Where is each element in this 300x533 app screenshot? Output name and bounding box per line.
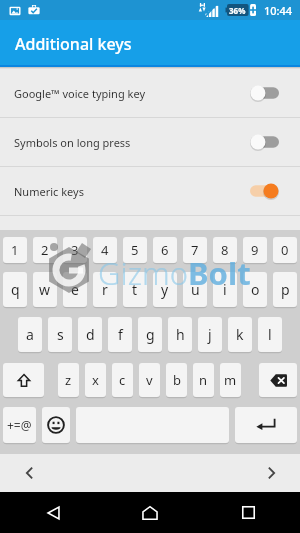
button[interactable]: Next [242, 454, 300, 492]
button[interactable]: p [273, 272, 297, 307]
button[interactable]: i [213, 272, 237, 307]
button[interactable]: +=@ [3, 407, 36, 443]
button[interactable]: j [198, 317, 222, 352]
staticText: w [39, 280, 51, 299]
staticText: f [118, 325, 123, 344]
staticText: v [146, 371, 153, 389]
staticText: a [26, 325, 34, 344]
button[interactable]: x [85, 363, 106, 397]
button[interactable]: Emoji [42, 407, 70, 443]
staticText: 6 [161, 241, 169, 259]
button[interactable]: Backspace [259, 363, 297, 397]
staticText: 8 [221, 241, 229, 259]
button[interactable]: w [33, 272, 57, 307]
button[interactable]: Previous [0, 454, 58, 492]
button[interactable]: 2 [33, 237, 57, 263]
button[interactable]: 7 [183, 237, 207, 263]
staticText: c [119, 371, 126, 389]
staticText: g [146, 325, 155, 344]
staticText: x [92, 371, 99, 389]
staticText: 9 [251, 241, 259, 259]
staticText: 4 [101, 241, 109, 259]
staticText: u [191, 280, 200, 299]
button[interactable]: 4 [93, 237, 117, 263]
button[interactable]: n [193, 363, 214, 397]
staticText: Numeric keys [14, 184, 250, 199]
staticText: 10:44 [264, 3, 293, 18]
staticText: Bolt [188, 252, 251, 294]
button[interactable]: Recents [203, 492, 293, 533]
staticText: e [71, 280, 79, 299]
button[interactable]: c [112, 363, 133, 397]
staticText: n [199, 371, 208, 389]
button[interactable]: d [78, 317, 102, 352]
button[interactable]: o [243, 272, 267, 307]
button[interactable]: 8 [213, 237, 237, 263]
staticText: Additional keys [15, 33, 132, 55]
button[interactable]: t [123, 272, 147, 307]
staticText: 1 [11, 241, 19, 259]
staticText: j [208, 325, 212, 344]
staticText: Gizmo [98, 252, 188, 294]
button[interactable]: y [153, 272, 177, 307]
staticText: 2 [41, 241, 49, 259]
button[interactable]: 6 [153, 237, 177, 263]
staticText: y [161, 280, 169, 299]
staticText: m [224, 371, 237, 389]
staticText: p [281, 280, 290, 299]
staticText: z [65, 371, 72, 389]
button[interactable]: k [228, 317, 252, 352]
staticText: 3 [71, 241, 79, 259]
staticText: 36% [229, 5, 246, 16]
button[interactable]: h [168, 317, 192, 352]
button[interactable]: r [93, 272, 117, 307]
button[interactable]: 0 [273, 237, 297, 263]
button[interactable]: 3 [63, 237, 87, 263]
button[interactable]: Back [8, 492, 98, 533]
staticText: Symbols on long press [14, 135, 250, 150]
staticText: s [57, 325, 64, 344]
staticText: i [223, 280, 227, 299]
button[interactable]: l [258, 317, 282, 352]
button[interactable]: v [139, 363, 160, 397]
button[interactable]: Numeric keys [0, 167, 300, 215]
staticText: k [236, 325, 244, 344]
staticText: +=@ [7, 417, 32, 433]
staticText: 5 [131, 241, 139, 259]
staticText: d [86, 325, 95, 344]
button[interactable]: 1 [3, 237, 27, 263]
button[interactable]: Enter [235, 407, 297, 443]
button[interactable]: Shift [3, 363, 44, 397]
staticText: b [173, 371, 181, 389]
staticText: l [268, 325, 272, 344]
button[interactable]: q [3, 272, 27, 307]
staticText: h [176, 325, 185, 344]
button[interactable]: u [183, 272, 207, 307]
staticText: 7 [191, 241, 199, 259]
staticText: Google™ voice typing key [14, 86, 250, 101]
button[interactable]: b [166, 363, 187, 397]
button[interactable]: Symbols on long press [0, 118, 300, 166]
button[interactable]: 9 [243, 237, 267, 263]
button[interactable]: s [48, 317, 72, 352]
staticText: o [251, 280, 260, 299]
button[interactable]: f [108, 317, 132, 352]
button[interactable]: e [63, 272, 87, 307]
staticText: r [102, 280, 108, 299]
button[interactable]: m [220, 363, 241, 397]
button[interactable]: Google™ voice typing key [0, 69, 300, 117]
button[interactable]: Home [105, 492, 195, 533]
button[interactable]: a [18, 317, 42, 352]
button[interactable]: g [138, 317, 162, 352]
staticText: 0 [281, 241, 289, 259]
button[interactable]: 5 [123, 237, 147, 263]
staticText: t [132, 280, 138, 299]
button[interactable]: z [58, 363, 79, 397]
staticText: q [11, 280, 20, 299]
